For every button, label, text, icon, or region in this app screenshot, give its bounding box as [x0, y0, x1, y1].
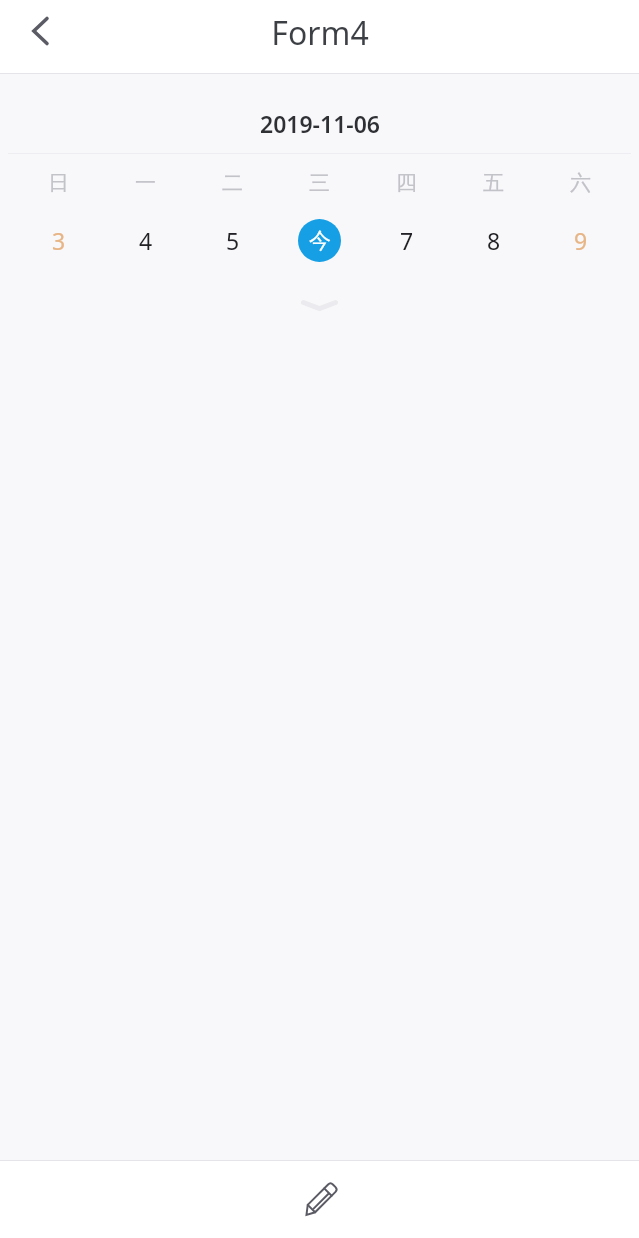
staticText: 5	[226, 225, 240, 256]
staticText: 日	[48, 170, 69, 196]
staticText: 3	[52, 225, 66, 256]
button[interactable]: 3	[15, 212, 102, 269]
button[interactable]: Back	[14, 4, 68, 58]
staticText: 一	[135, 170, 156, 196]
staticText: 四	[396, 170, 417, 196]
staticText: 4	[139, 225, 153, 256]
staticText: 二	[222, 170, 243, 196]
button[interactable]: 今	[276, 212, 363, 269]
staticText: 五	[483, 170, 504, 196]
staticText: 2019-11-06	[260, 108, 380, 139]
staticText: 9	[574, 225, 588, 256]
staticText: 六	[570, 170, 591, 196]
staticText: 三	[309, 170, 330, 196]
button[interactable]: 9	[537, 212, 624, 269]
staticText: 今	[309, 227, 331, 255]
button[interactable]: 8	[450, 212, 537, 269]
staticText: 8	[487, 225, 501, 256]
staticText: 7	[400, 225, 414, 256]
button[interactable]: 4	[102, 212, 189, 269]
button[interactable]: 7	[363, 212, 450, 269]
button[interactable]: 5	[189, 212, 276, 269]
button[interactable]: Edit	[287, 1167, 353, 1233]
staticText: Form4	[271, 11, 369, 53]
button[interactable]: 2019-11-06	[0, 103, 639, 143]
